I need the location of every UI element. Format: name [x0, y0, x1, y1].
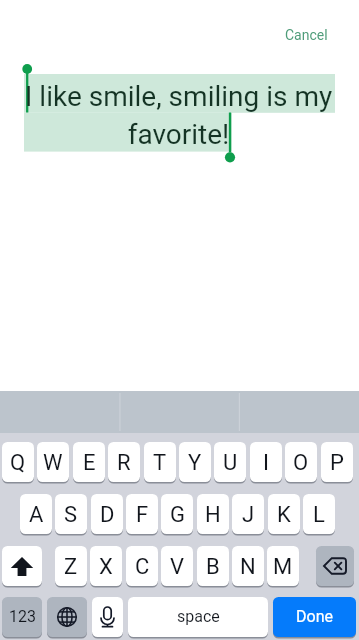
staticText: O [293, 450, 309, 476]
staticText: I like smile, smiling is my favorite! [23, 80, 334, 151]
button[interactable]: W [37, 442, 69, 482]
staticText: T [153, 450, 167, 476]
button[interactable]: H [197, 494, 229, 534]
staticText: Y [188, 450, 202, 476]
button[interactable]: S [55, 494, 87, 534]
button[interactable]: F [126, 494, 158, 534]
button[interactable]: J [232, 494, 264, 534]
staticText: S [64, 502, 78, 528]
staticText: B [206, 554, 220, 580]
staticText: X [99, 554, 113, 580]
button[interactable]: A [20, 494, 52, 534]
staticText: K [277, 502, 291, 528]
staticText: D [100, 502, 115, 528]
staticText: Q [10, 450, 26, 476]
staticText: V [170, 554, 185, 580]
staticText: N [240, 554, 256, 580]
button[interactable]: M [267, 546, 299, 586]
staticText: A [29, 502, 44, 528]
staticText: R [117, 450, 131, 476]
button[interactable]: P [321, 442, 353, 482]
button[interactable]: L [303, 494, 335, 534]
staticText: H [205, 502, 221, 528]
button[interactable]: B [197, 546, 229, 586]
button[interactable]: R [108, 442, 140, 482]
button[interactable]: O [285, 442, 317, 482]
button[interactable]: T [144, 442, 176, 482]
staticText: J [242, 502, 255, 528]
button[interactable]: N [232, 546, 264, 586]
button[interactable]: E [73, 442, 105, 482]
staticText: F [136, 502, 149, 528]
staticText: Z [64, 554, 78, 580]
button[interactable]: V [161, 546, 193, 586]
staticText: I [263, 450, 269, 476]
button[interactable]: Backspace [316, 546, 354, 586]
staticText: E [83, 450, 96, 476]
staticText: 123 [9, 607, 36, 626]
button[interactable]: Voice input [92, 597, 123, 637]
staticText: C [135, 554, 150, 580]
staticText: G [170, 502, 185, 528]
button[interactable]: Cancel [277, 21, 336, 49]
staticText: Done [296, 607, 333, 626]
button[interactable]: space [128, 597, 268, 637]
button[interactable]: D [91, 494, 123, 534]
button[interactable]: Done [273, 597, 356, 637]
button[interactable]: K [268, 494, 300, 534]
staticText: L [313, 502, 325, 528]
staticText: W [43, 450, 63, 476]
button[interactable]: 123 [2, 597, 42, 637]
button[interactable]: Switch keyboard language [47, 597, 87, 637]
button[interactable]: I [250, 442, 282, 482]
staticText: Cancel [285, 27, 328, 43]
button[interactable]: C [126, 546, 158, 586]
button[interactable]: G [161, 494, 193, 534]
button[interactable]: Y [179, 442, 211, 482]
staticText: P [330, 450, 344, 476]
staticText: U [223, 450, 238, 476]
staticText: M [273, 554, 293, 580]
button[interactable]: Q [2, 442, 34, 482]
button[interactable]: U [214, 442, 246, 482]
button[interactable]: X [90, 546, 122, 586]
staticText: space [177, 607, 220, 626]
button[interactable]: Shift [2, 546, 42, 586]
button[interactable]: Z [55, 546, 87, 586]
